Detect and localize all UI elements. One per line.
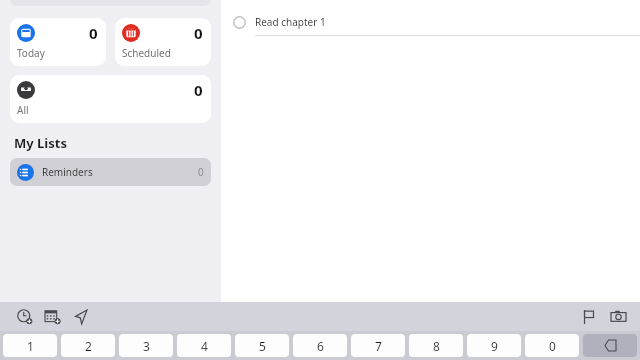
button[interactable]: 1 <box>3 334 57 357</box>
button[interactable]: 9 <box>467 334 521 357</box>
staticText: 6 <box>317 338 324 354</box>
staticText: 8 <box>433 338 440 354</box>
staticText: Today <box>17 46 45 60</box>
button[interactable]: 0 <box>115 18 211 66</box>
staticText: 0 <box>194 80 203 100</box>
staticText: Reminders <box>42 165 93 179</box>
staticText: 1 <box>27 338 34 354</box>
button[interactable]: 2 <box>61 334 115 357</box>
button[interactable]: 5 <box>235 334 289 357</box>
button[interactable]: Add photo <box>611 309 626 324</box>
staticText: All <box>17 103 29 117</box>
button[interactable]: 0 <box>525 334 579 357</box>
button[interactable]: Reminders <box>10 158 211 186</box>
button[interactable]: 8 <box>409 334 463 357</box>
staticText: 0 <box>198 165 204 179</box>
button[interactable]: Add date <box>45 309 60 324</box>
staticText: 2 <box>85 338 92 354</box>
staticText: 0 <box>194 23 203 43</box>
staticText: Scheduled <box>122 46 171 60</box>
staticText: Read chapter 1 <box>255 15 326 29</box>
button[interactable]: 6 <box>293 334 347 357</box>
staticText: 0 <box>549 338 556 354</box>
staticText: 5 <box>259 338 266 354</box>
staticText: 4 <box>201 338 208 354</box>
button[interactable]: 0 <box>10 75 211 123</box>
button[interactable]: Read chapter 1 <box>221 9 640 35</box>
button[interactable]: 7 <box>351 334 405 357</box>
button[interactable]: 0 <box>10 18 106 66</box>
button[interactable]: Add time <box>17 309 32 324</box>
staticText: 3 <box>143 338 150 354</box>
button[interactable]: Delete <box>583 334 637 357</box>
staticText: 7 <box>375 338 382 354</box>
button[interactable]: Add location <box>73 310 87 324</box>
staticText: 0 <box>89 23 98 43</box>
button[interactable]: Flag <box>582 310 596 324</box>
staticText: 9 <box>491 338 498 354</box>
button[interactable]: 3 <box>119 334 173 357</box>
staticText: My Lists <box>14 134 67 152</box>
button[interactable]: 4 <box>177 334 231 357</box>
